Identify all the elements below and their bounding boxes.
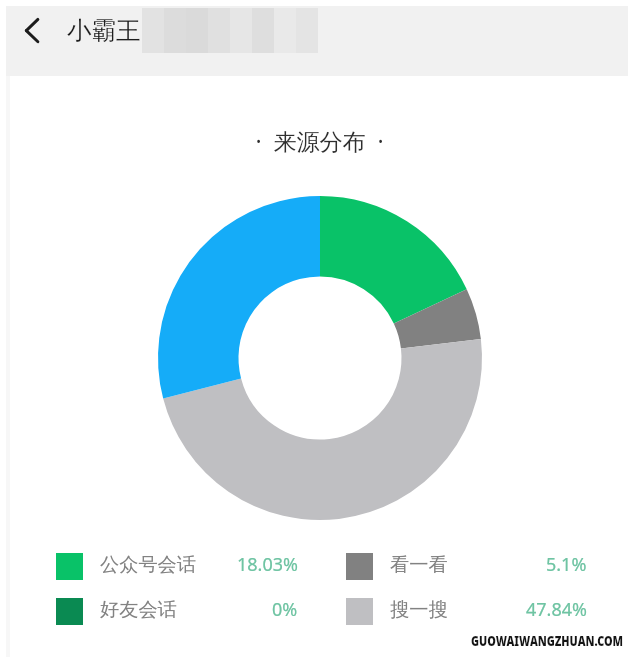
button[interactable]: 公众号会话	[56, 553, 298, 580]
staticText: 18.03%	[237, 552, 298, 577]
staticText: · 来源分布 ·	[3, 125, 633, 156]
button[interactable]: 好友会话	[56, 598, 298, 625]
button[interactable]: 看一看	[346, 553, 587, 580]
button[interactable]: Back	[0, 6, 46, 54]
staticText: 搜一搜	[390, 598, 448, 622]
staticText: 47.84%	[526, 597, 587, 622]
staticText: 好友会话	[100, 598, 177, 622]
staticText: 看一看	[390, 553, 448, 577]
staticText: GUOWAIWANGZHUAN.COM	[471, 631, 623, 650]
staticText: 0%	[272, 597, 298, 622]
staticText: 5.1%	[546, 552, 587, 577]
button[interactable]: 搜一搜	[346, 598, 587, 625]
staticText: 小霸王	[67, 15, 141, 46]
staticText: 公众号会话	[100, 553, 196, 577]
